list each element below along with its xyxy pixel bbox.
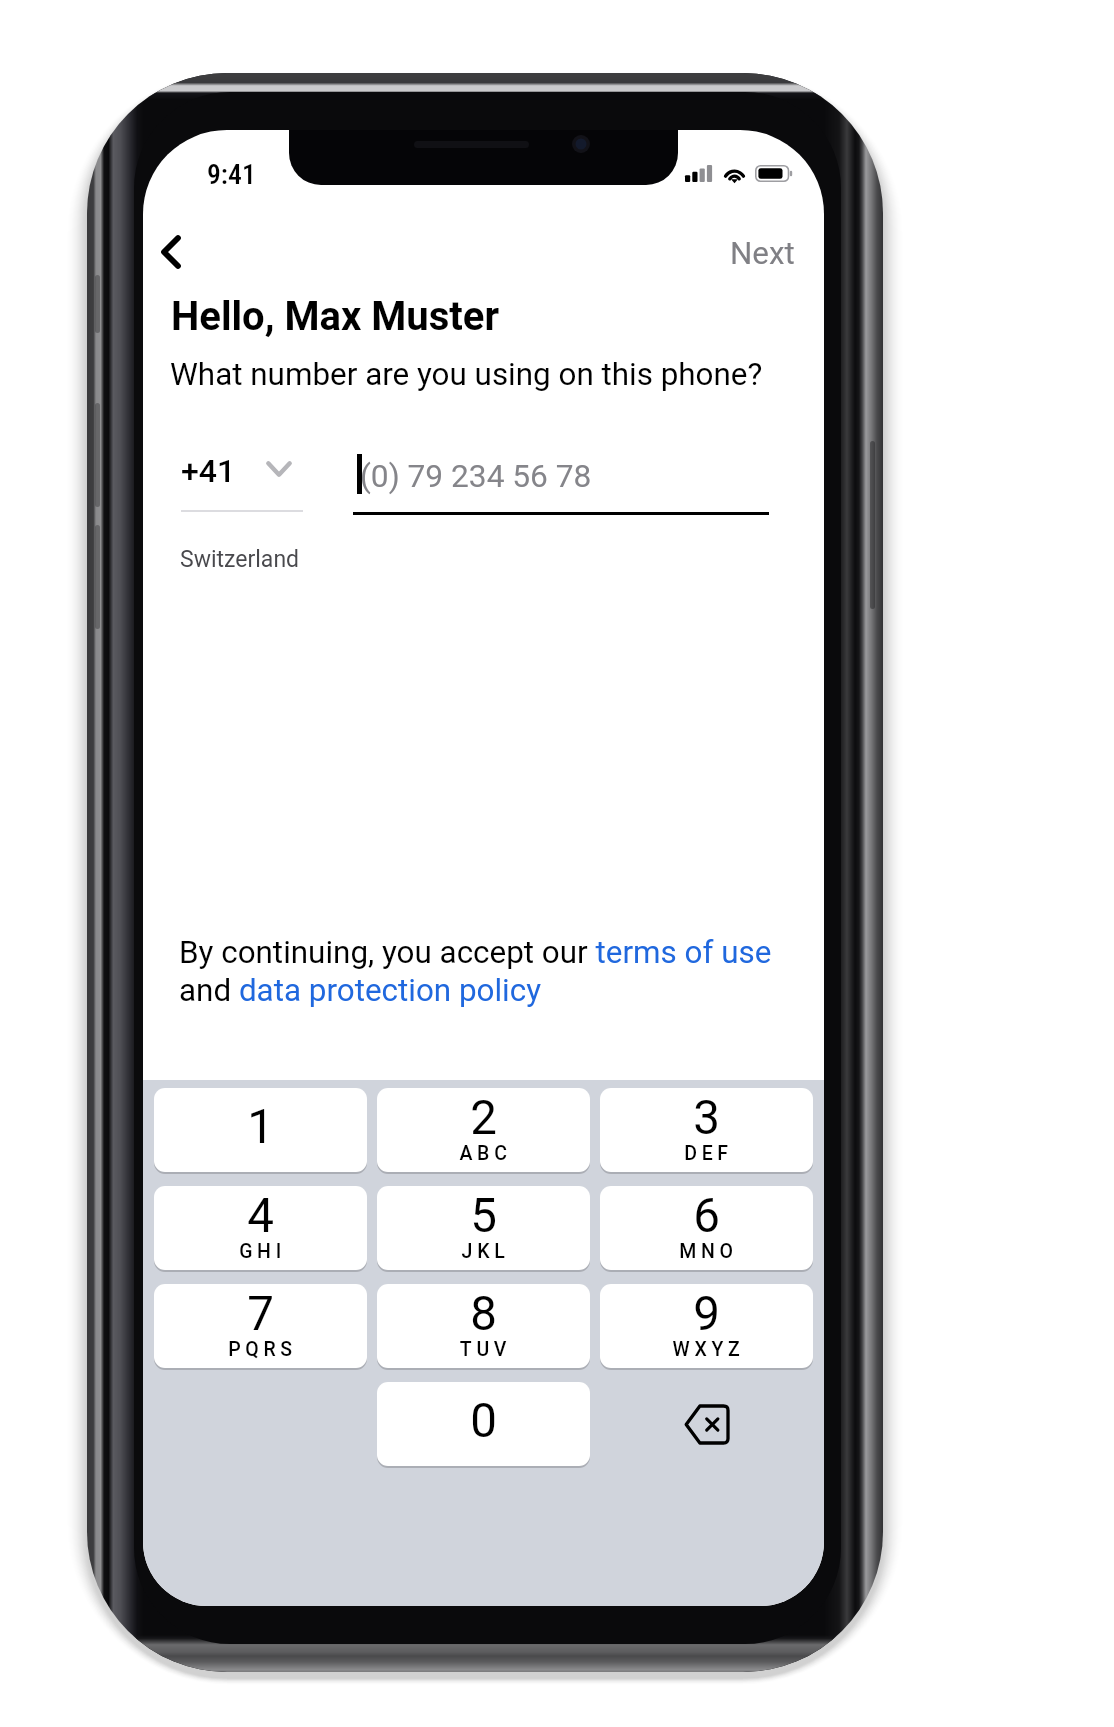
staticText: 4 [154,1188,367,1244]
staticText: PQRS [156,1338,367,1361]
staticText: 8 [377,1286,590,1342]
button[interactable]: Back [143,211,213,293]
staticText: 1 [154,1099,367,1155]
button[interactable]: Backspace [600,1382,813,1466]
staticText: 5 [377,1188,590,1244]
button[interactable]: 5 [377,1186,590,1270]
staticText: 7 [154,1286,367,1342]
staticText: Next [730,235,795,272]
staticText: 9:41 [207,158,256,190]
staticText: 9 [600,1286,813,1342]
staticText: 6 [600,1188,813,1244]
staticText: By continuing, you accept our terms of u… [179,934,779,1008]
staticText: DEF [602,1142,813,1165]
button[interactable]: Next [708,235,814,280]
button[interactable]: 3 [600,1088,813,1172]
button[interactable]: 9 [600,1284,813,1368]
staticText: 0 [377,1393,590,1449]
staticText: 3 [600,1090,813,1146]
staticText: WXYZ [602,1338,813,1361]
staticText: 2 [377,1090,590,1146]
button[interactable]: Country code [175,440,303,502]
staticText: TUV [379,1338,590,1361]
staticText: (0) 79 234 56 78 [360,458,592,495]
staticText: JKL [379,1240,590,1263]
button[interactable]: terms of use [595,932,773,968]
button[interactable]: 8 [377,1284,590,1368]
staticText: MNO [602,1240,813,1263]
button[interactable]: data protection policy [236,969,542,1005]
staticText: ABC [379,1142,590,1165]
button[interactable]: 6 [600,1186,813,1270]
staticText: Switzerland [180,546,300,573]
button[interactable]: 0 [377,1382,590,1466]
button[interactable]: 2 [377,1088,590,1172]
button[interactable]: 1 [154,1088,367,1172]
staticText: What number are you using on this phone? [170,356,763,393]
staticText: GHI [156,1240,367,1263]
button[interactable]: Phone number [353,440,769,515]
staticText: +41 [181,452,236,490]
button[interactable]: 4 [154,1186,367,1270]
button[interactable]: 7 [154,1284,367,1368]
staticText: Hello, Max Muster [171,293,500,340]
